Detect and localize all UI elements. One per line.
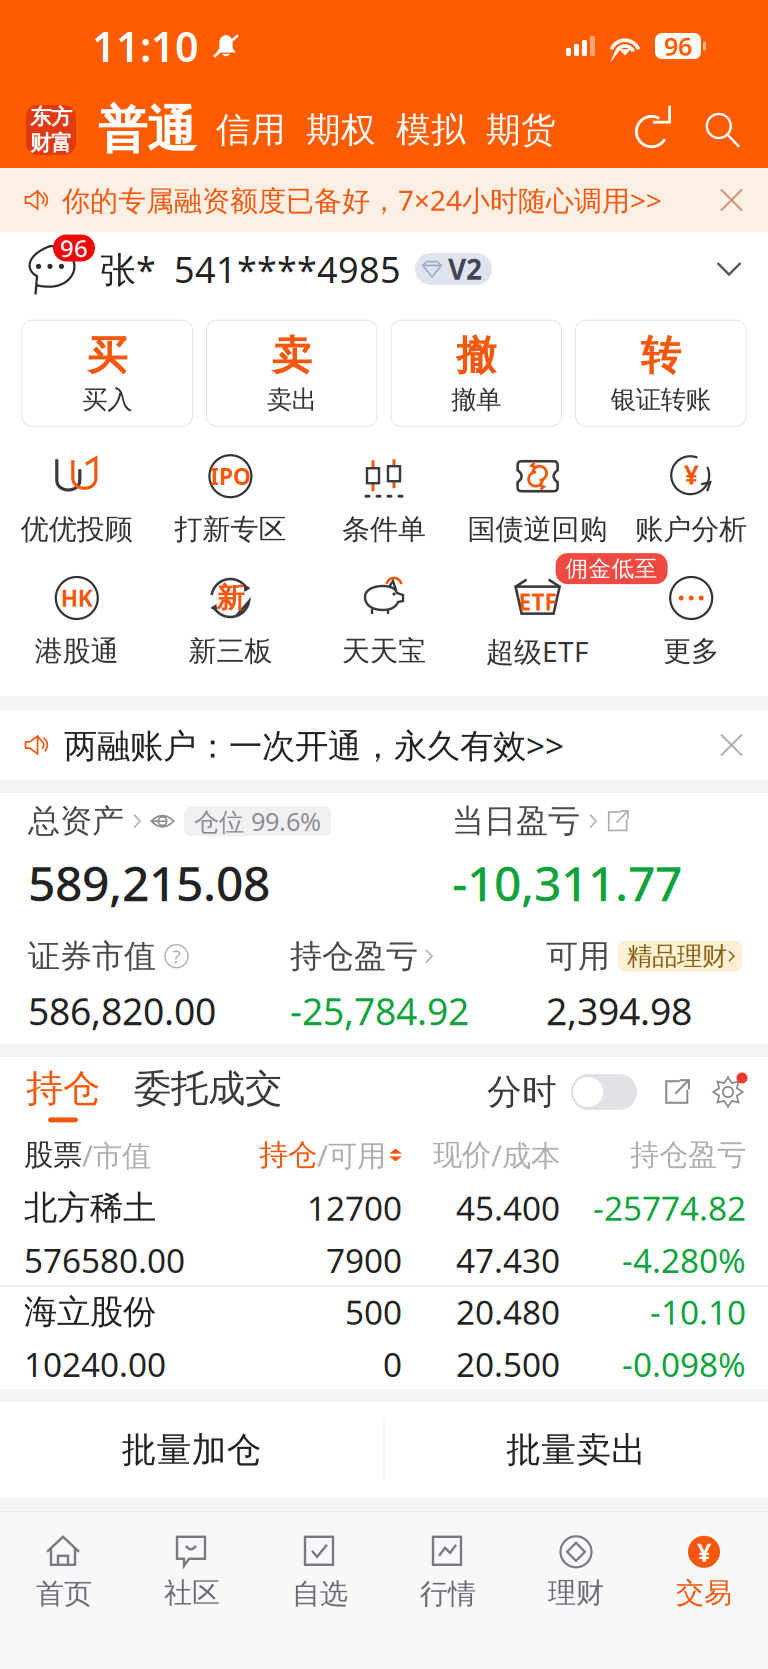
staticText: 撤 (456, 331, 496, 380)
button[interactable]: 理财 (512, 1522, 640, 1618)
button[interactable]: 海立股份 (0, 1287, 768, 1389)
button[interactable]: 批量卖出 (384, 1402, 768, 1498)
staticText: 96 (664, 29, 692, 63)
staticText: 20.480 (456, 1290, 560, 1334)
staticText: 条件单 (342, 512, 426, 547)
staticText: 首页 (36, 1577, 92, 1611)
button[interactable]: 自选 (256, 1521, 384, 1619)
button[interactable]: 更多 (614, 574, 768, 668)
staticText: 买入 (82, 384, 132, 415)
staticText: 45.400 (456, 1186, 560, 1230)
button[interactable]: Settings (690, 1076, 744, 1108)
button[interactable]: Open detail (606, 810, 629, 833)
staticText: 交易 (676, 1576, 732, 1610)
staticText: IPO (210, 461, 251, 491)
button[interactable]: Refresh (634, 110, 674, 150)
staticText: 2,394.98 (546, 986, 692, 1035)
staticText: -4.280% (622, 1238, 746, 1282)
staticText: -25774.82 (593, 1186, 746, 1230)
staticText: ¥ (697, 1535, 711, 1569)
staticText: 期权 (306, 109, 376, 151)
button[interactable]: 96 (0, 232, 768, 306)
button[interactable]: 转 (575, 320, 746, 426)
staticText: ¥ (684, 456, 699, 492)
button[interactable]: 条件单 (307, 452, 461, 547)
button[interactable]: 普通 (76, 100, 196, 160)
staticText: 仓位 99.6% (194, 804, 321, 838)
staticText: -10,311.77 (452, 851, 682, 914)
staticText: 证券市值 (28, 937, 156, 976)
button[interactable]: 信用 (196, 109, 286, 151)
button[interactable]: Toggle balance (150, 809, 175, 834)
staticText: 卖出 (267, 384, 317, 415)
staticText: 可用 (546, 937, 610, 976)
staticText: 撤单 (451, 384, 501, 415)
button[interactable]: 期货 (466, 109, 556, 151)
button[interactable]: Search (674, 110, 742, 150)
staticText: /可用 (317, 1135, 386, 1174)
button[interactable]: 优优投顾 (0, 452, 154, 547)
staticText: 海立股份 (24, 1291, 156, 1332)
staticText: 普通 (98, 100, 196, 160)
button[interactable]: IPO (154, 452, 307, 547)
staticText: 期货 (486, 109, 556, 151)
button[interactable]: 批量加仓 (0, 1402, 383, 1498)
button[interactable]: 撤 (391, 320, 561, 426)
button[interactable]: 模拟 (376, 109, 466, 151)
staticText: 47.430 (456, 1238, 560, 1282)
staticText: 银证转账 (611, 384, 711, 415)
button[interactable]: 委托成交 (100, 1062, 282, 1122)
staticText: 行情 (420, 1577, 476, 1611)
staticText: 卖 (272, 331, 312, 380)
button[interactable]: HK (0, 574, 154, 668)
button[interactable]: 天天宝 (307, 574, 461, 668)
staticText: 你的专属融资额度已备好，7×24小时随心调用>> (62, 181, 662, 219)
staticText: 96 (60, 232, 88, 264)
button[interactable]: 精品理财 (618, 941, 742, 972)
button[interactable]: 社区 (128, 1522, 256, 1618)
staticText: 576580.00 (24, 1238, 185, 1282)
button[interactable]: 行情 (384, 1521, 512, 1619)
staticText: 委托成交 (134, 1066, 282, 1111)
staticText: 持仓 (26, 1066, 100, 1111)
button[interactable]: ¥ (614, 452, 768, 547)
staticText: /成本 (491, 1135, 560, 1174)
button[interactable]: 北方稀土 (0, 1183, 768, 1285)
staticText: 批量加仓 (122, 1429, 262, 1471)
button[interactable]: 持仓 (26, 1062, 100, 1122)
button[interactable]: 期权 (286, 109, 376, 151)
staticText: 买 (87, 331, 127, 380)
button[interactable]: Close (721, 734, 742, 755)
button[interactable]: 首页 (0, 1521, 128, 1619)
staticText: ETF (519, 587, 557, 617)
button[interactable]: 新 (154, 574, 307, 668)
staticText: 精品理财 (627, 941, 727, 972)
button[interactable]: 卖 (206, 320, 377, 426)
button[interactable]: 国债逆回购 (461, 452, 614, 547)
button[interactable]: Close (721, 189, 742, 210)
button[interactable]: Toggle intraday (557, 1074, 637, 1110)
staticText: 张* 541****4985 (100, 245, 401, 293)
staticText: 社区 (164, 1576, 220, 1610)
button[interactable]: ¥ (640, 1522, 768, 1618)
button[interactable]: ETF (461, 573, 614, 670)
staticText: 账户分析 (635, 512, 747, 547)
button[interactable]: 买 (22, 320, 192, 426)
staticText: 打新专区 (174, 512, 286, 547)
staticText: 转 (641, 331, 681, 380)
staticText: V2 (448, 250, 482, 288)
button[interactable]: Expand (637, 1078, 690, 1105)
staticText: 北方稀土 (24, 1187, 156, 1228)
staticText: 持仓盈亏 (290, 937, 418, 976)
staticText: 股票 (24, 1137, 82, 1173)
staticText: 7900 (326, 1238, 402, 1282)
staticText: /市值 (82, 1135, 151, 1174)
staticText: 当日盈亏 (452, 801, 580, 841)
staticText: 优优投顾 (21, 512, 133, 547)
staticText: 信用 (216, 109, 286, 151)
staticText: 10240.00 (24, 1342, 166, 1386)
staticText: 东方 财富 (30, 104, 72, 156)
staticText: 天天宝 (342, 634, 426, 668)
staticText: 总资产 (28, 801, 124, 841)
staticText: 港股通 (35, 634, 119, 668)
